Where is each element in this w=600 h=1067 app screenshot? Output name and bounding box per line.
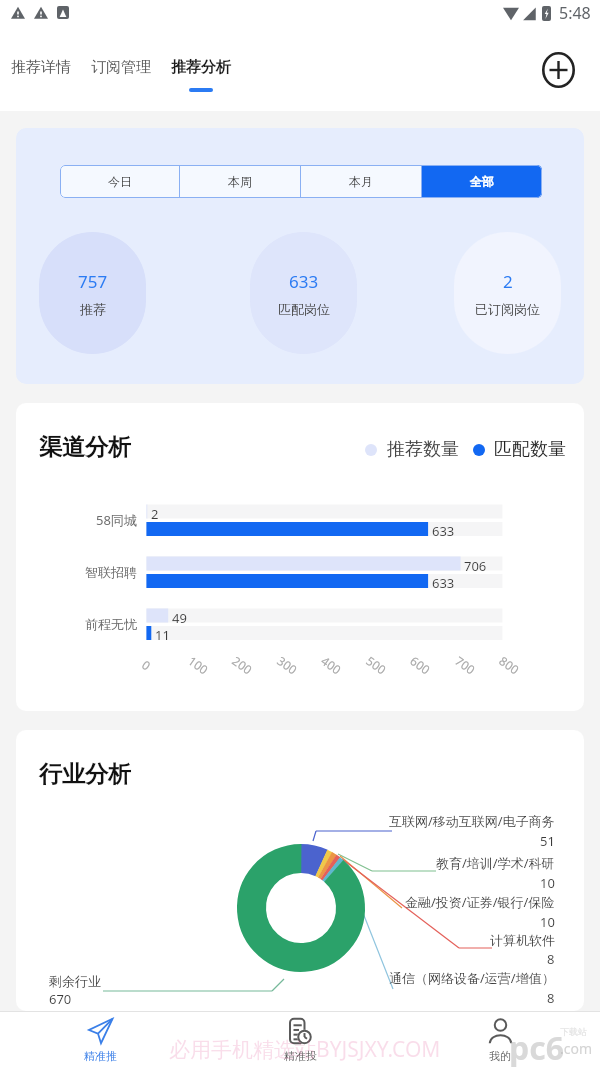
staticText: 教育/培训/学术/科研 — [436, 854, 555, 872]
staticText: 推荐 — [80, 301, 106, 317]
staticText: 匹配数量 — [494, 438, 566, 461]
staticText: 匹配岗位 — [278, 301, 330, 317]
staticText: 剩余行业 — [49, 973, 101, 989]
button[interactable]: 本周 — [180, 165, 300, 198]
staticText: 渠道分析 — [39, 433, 131, 462]
staticText: 300 — [274, 652, 301, 678]
staticText: 51 — [540, 832, 555, 850]
staticText: 互联网/移动互联网/电子商务 — [389, 812, 555, 830]
staticText: 计算机软件 — [490, 932, 555, 948]
staticText: 推荐分析 — [171, 58, 231, 77]
staticText: 49 — [172, 609, 187, 623]
staticText: 800 — [496, 652, 523, 678]
staticText: 8 — [547, 950, 555, 968]
button[interactable]: 本月 — [301, 165, 421, 198]
button[interactable]: 精准投 — [200, 1011, 400, 1067]
staticText: 推荐数量 — [387, 438, 459, 461]
staticText: 本周 — [228, 174, 252, 189]
staticText: 633 — [432, 522, 455, 536]
staticText: 已订阅岗位 — [475, 301, 540, 317]
staticText: 700 — [452, 652, 479, 678]
staticText: 精准投 — [284, 1049, 317, 1063]
staticText: 全部 — [470, 174, 494, 189]
button[interactable]: 633 — [250, 232, 357, 354]
staticText: pc6 — [509, 1026, 565, 1067]
staticText: 58同城 — [96, 511, 137, 529]
staticText: 633 — [432, 574, 455, 588]
staticText: 我的 — [489, 1049, 511, 1063]
staticText: 5:48 — [559, 2, 591, 24]
button[interactable]: 2 — [454, 232, 561, 354]
staticText: 下载站 — [560, 1026, 587, 1037]
staticText: 11 — [155, 626, 170, 640]
staticText: 今日 — [108, 174, 132, 189]
button[interactable]: 今日 — [60, 165, 179, 198]
staticText: 前程无忧 — [85, 616, 137, 632]
button[interactable]: 全部 — [422, 165, 542, 198]
staticText: 订阅管理 — [91, 58, 151, 77]
staticText: 推荐详情 — [11, 58, 71, 77]
button[interactable]: Add — [536, 48, 580, 92]
staticText: 757 — [78, 270, 108, 293]
staticText: 通信（网络设备/运营/增值） — [389, 969, 555, 987]
button[interactable]: 精准推 — [0, 1011, 200, 1067]
staticText: 必用手机精选站BYJSJXY.COM — [169, 1035, 441, 1064]
staticText: 0 — [139, 656, 154, 673]
staticText: 行业分析 — [39, 760, 131, 789]
staticText: 706 — [464, 557, 487, 571]
staticText: 100 — [185, 652, 212, 678]
staticText: 400 — [318, 652, 345, 678]
staticText: 200 — [229, 652, 256, 678]
button[interactable]: 推荐分析 — [161, 53, 241, 99]
staticText: 金融/投资/证券/银行/保险 — [405, 893, 555, 911]
staticText: 670 — [49, 990, 72, 1008]
staticText: 8 — [547, 989, 555, 1007]
staticText: 633 — [289, 270, 319, 293]
staticText: 智联招聘 — [85, 564, 137, 580]
staticText: 10 — [540, 874, 555, 892]
staticText: 本月 — [349, 174, 373, 189]
button[interactable]: 我的 — [400, 1011, 600, 1067]
staticText: 500 — [363, 652, 390, 678]
button[interactable]: 推荐详情 — [1, 53, 81, 99]
staticText: 2 — [503, 270, 513, 293]
staticText: 600 — [407, 652, 434, 678]
staticText: 精准推 — [84, 1049, 117, 1063]
staticText: 2 — [151, 505, 159, 519]
staticText: .com — [560, 1039, 593, 1058]
staticText: 10 — [540, 913, 555, 931]
button[interactable]: 订阅管理 — [81, 53, 161, 99]
button[interactable]: 757 — [39, 232, 146, 354]
